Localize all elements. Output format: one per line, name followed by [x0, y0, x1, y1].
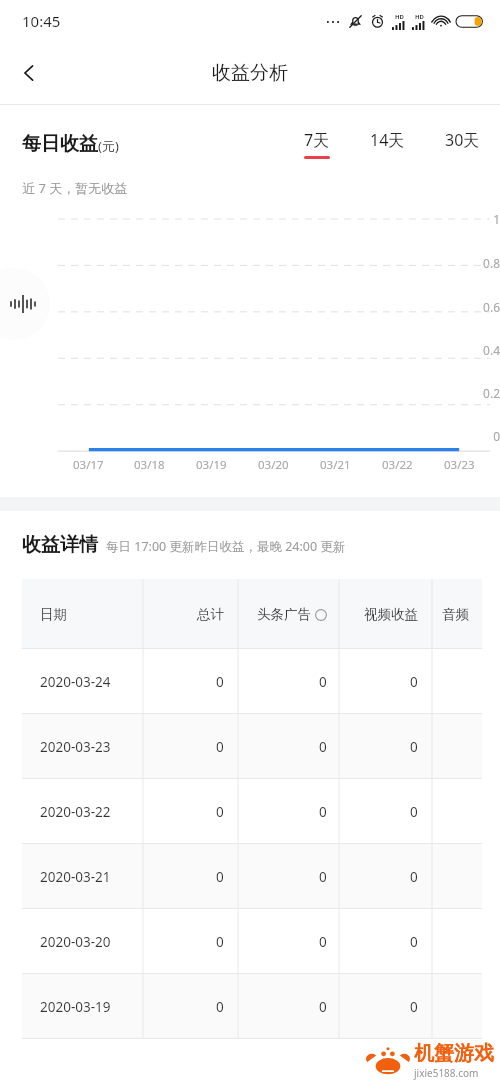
staticText: 近 7 天，暂无收益 [22, 179, 128, 197]
staticText: 03/18 [134, 457, 165, 473]
staticText: 0 [319, 738, 327, 756]
staticText: 0.6 [483, 299, 500, 315]
staticText: 03/17 [73, 457, 104, 473]
button[interactable]: 7天 [302, 127, 332, 161]
staticText: 0 [319, 998, 327, 1016]
staticText: 2020-03-21 [40, 868, 111, 886]
staticText: 0 [319, 673, 327, 691]
staticText: 0 [410, 738, 418, 756]
staticText: 0 [216, 673, 224, 691]
staticText: 2020-03-19 [40, 998, 111, 1016]
staticText: 10:45 [22, 11, 61, 31]
button[interactable]: 2020-03-19 [22, 974, 482, 1039]
staticText: 0 [216, 933, 224, 951]
staticText: 1 [493, 211, 500, 227]
staticText: 0 [410, 998, 418, 1016]
staticText: 0 [216, 803, 224, 821]
staticText: 0.8 [483, 255, 500, 271]
staticText: 2020-03-20 [40, 933, 111, 951]
button[interactable]: 14天 [368, 127, 407, 161]
staticText: jixie5188.com [414, 1066, 479, 1080]
staticText: 03/22 [382, 457, 413, 473]
staticText: (元) [98, 137, 119, 155]
staticText: 0 [319, 933, 327, 951]
button[interactable]: 2020-03-21 [22, 844, 482, 909]
staticText: HD [395, 13, 404, 21]
staticText: 0.4 [483, 342, 500, 358]
staticText: 03/20 [258, 457, 289, 473]
staticText: 2020-03-23 [40, 738, 111, 756]
staticText: 2020-03-24 [40, 673, 111, 691]
staticText: 日期 [40, 606, 67, 623]
staticText: 0 [216, 998, 224, 1016]
staticText: 0 [410, 673, 418, 691]
staticText: 0 [410, 868, 418, 886]
staticText: 0 [410, 933, 418, 951]
staticText: 总计 [197, 606, 224, 623]
staticText: 14天 [370, 129, 405, 151]
staticText: 0 [410, 803, 418, 821]
staticText: 每日 17:00 更新昨日收益，最晚 24:00 更新 [106, 538, 346, 555]
button[interactable]: Audio assistant [0, 268, 50, 340]
staticText: 音频 [442, 606, 469, 623]
staticText: 机蟹游戏 [414, 1041, 494, 1066]
button[interactable]: 2020-03-20 [22, 909, 482, 974]
staticText: 7天 [304, 129, 330, 151]
staticText: 头条广告 [257, 606, 311, 623]
button[interactable]: 2020-03-24 [22, 649, 482, 714]
staticText: 03/23 [444, 457, 475, 473]
staticText: 03/21 [320, 457, 351, 473]
staticText: 0 [216, 738, 224, 756]
staticText: 收益分析 [212, 61, 288, 85]
button[interactable]: Back [8, 52, 50, 94]
staticText: 0 [493, 428, 500, 444]
button[interactable]: 2020-03-23 [22, 714, 482, 779]
staticText: HD [415, 13, 424, 21]
staticText: 0 [216, 868, 224, 886]
staticText: 03/19 [196, 457, 227, 473]
staticText: 收益详情 [22, 533, 98, 557]
staticText: 2020-03-22 [40, 803, 111, 821]
staticText: 0 [319, 803, 327, 821]
button[interactable]: 30天 [443, 127, 482, 161]
staticText: 每日收益 [22, 132, 98, 156]
button[interactable]: 2020-03-22 [22, 779, 482, 844]
staticText: 30天 [445, 129, 480, 151]
staticText: 0 [319, 868, 327, 886]
staticText: 视频收益 [364, 606, 418, 623]
staticText: 0.2 [483, 385, 500, 401]
